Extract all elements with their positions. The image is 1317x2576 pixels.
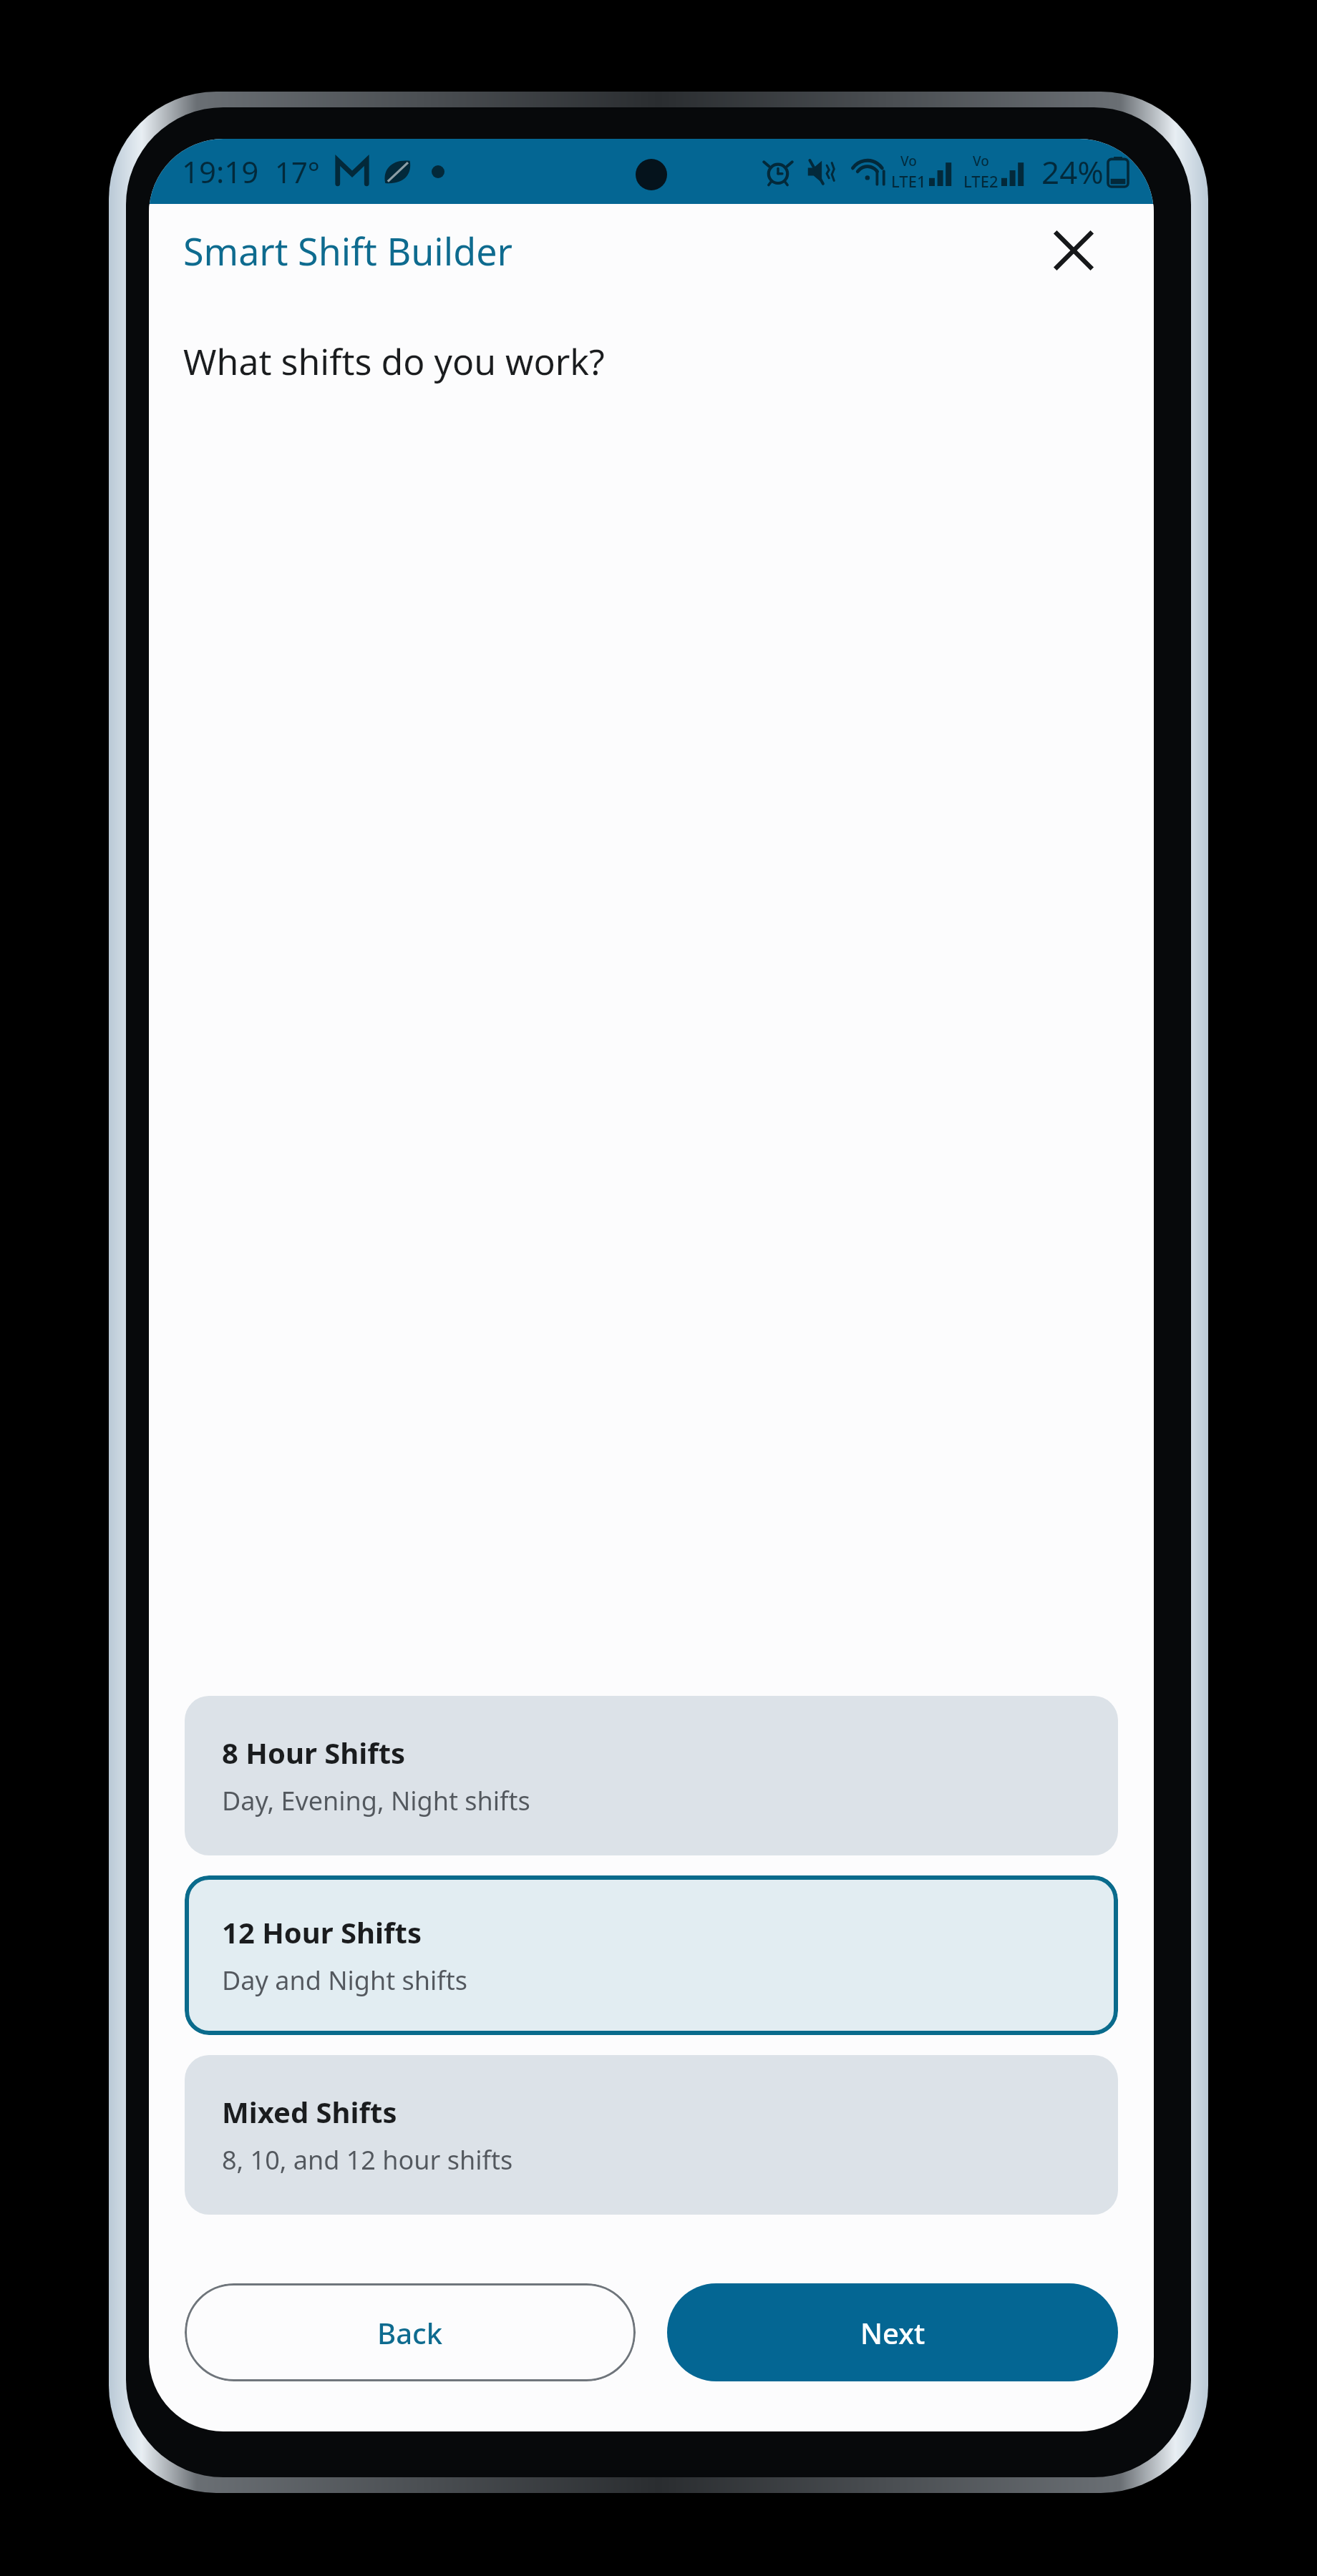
button[interactable]: Back bbox=[185, 2283, 636, 2381]
staticText: 8, 10, and 12 hour shifts bbox=[222, 2142, 513, 2177]
staticText: Next bbox=[860, 2313, 925, 2352]
button[interactable]: Close bbox=[1039, 216, 1108, 285]
staticText: 19:19 bbox=[182, 151, 259, 192]
staticText: 8 Hour Shifts bbox=[222, 1733, 406, 1772]
button[interactable]: Next bbox=[667, 2283, 1118, 2381]
staticText: LTE1 bbox=[891, 170, 926, 192]
staticText: 12 Hour Shifts bbox=[222, 1913, 422, 1951]
staticText: 24% bbox=[1041, 150, 1104, 193]
button[interactable]: 8 Hour Shifts bbox=[185, 1696, 1118, 1855]
staticText: Smart Shift Builder bbox=[183, 225, 512, 276]
button[interactable]: 12 Hour Shifts bbox=[185, 1875, 1118, 2035]
staticText: Back bbox=[377, 2313, 443, 2352]
staticText: Vo bbox=[973, 152, 989, 170]
staticText: LTE2 bbox=[963, 170, 998, 192]
staticText: Day, Evening, Night shifts bbox=[222, 1783, 530, 1818]
staticText: Day and Night shifts bbox=[222, 1963, 467, 1998]
staticText: Mixed Shifts bbox=[222, 2092, 397, 2131]
staticText: Vo bbox=[900, 152, 917, 170]
button[interactable]: Mixed Shifts bbox=[185, 2055, 1118, 2215]
staticText: What shifts do you work? bbox=[183, 337, 605, 386]
staticText: 17° bbox=[275, 152, 320, 191]
